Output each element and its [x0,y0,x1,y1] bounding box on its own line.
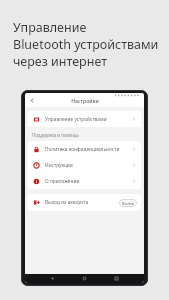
button[interactable]: Назад [48,274,57,283]
staticText: Поддержка и помощь [32,132,79,138]
staticText: Политика конфиденциальности [45,146,132,153]
staticText: Управление Bluetooth устройствами через … [13,19,159,70]
staticText: Настройки [71,97,99,104]
button[interactable]: Инструкции [28,157,141,173]
button[interactable]: Выйти [119,199,137,207]
staticText: О приложении [45,178,132,185]
button[interactable]: О приложении [28,173,141,189]
button[interactable]: Политика конфиденциальности [28,141,141,157]
button[interactable]: Назад [28,96,37,105]
staticText: Выйти [122,201,135,206]
button[interactable]: Выход из аккаунта [28,194,141,211]
staticText: Инструкции [45,162,132,169]
button[interactable]: Управление устройствами [28,111,141,127]
staticText: Выход из аккаунта [45,199,119,206]
button[interactable]: Обзор [112,274,121,283]
staticText: Управление устройствами [45,116,132,123]
button[interactable]: Главный экран [80,274,89,283]
